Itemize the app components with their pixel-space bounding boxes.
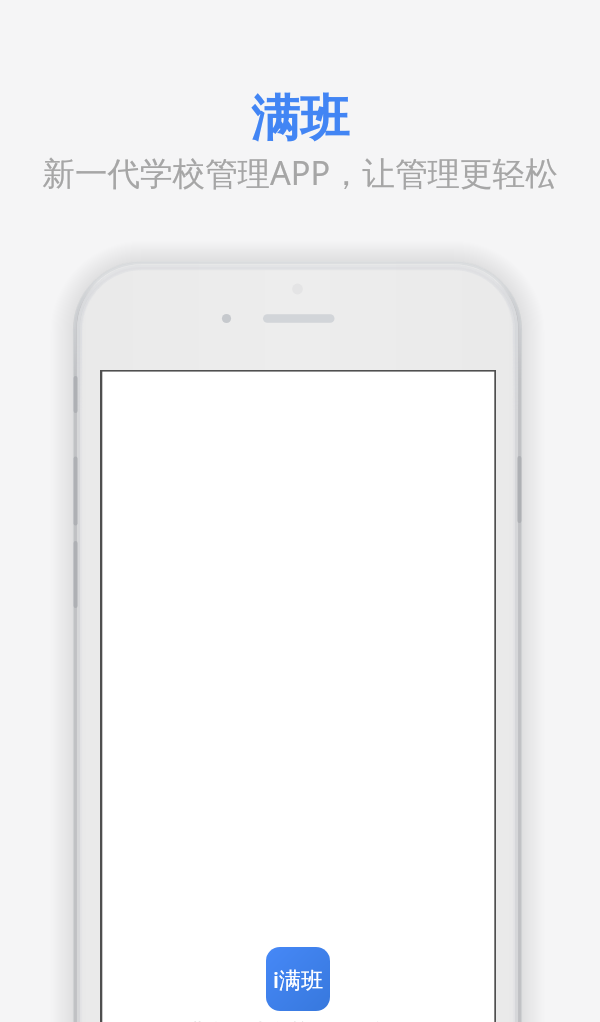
staticText: 新一代学校管理APP，让管理更轻松 <box>0 150 600 194</box>
staticText: 满班 <box>0 88 600 150</box>
button[interactable]: 满班 app icon <box>266 947 330 1011</box>
staticText: i满班 <box>273 964 323 994</box>
staticText: 满班，让学校管理更轻松 <box>0 1019 600 1022</box>
